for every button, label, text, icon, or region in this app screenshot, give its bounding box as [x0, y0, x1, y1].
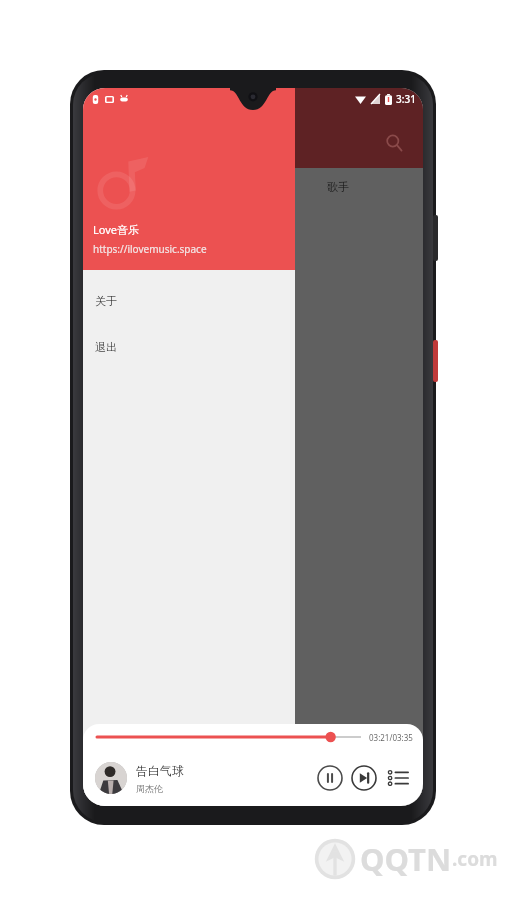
button[interactable]: Next — [349, 763, 379, 793]
staticText: 告白气球 — [136, 763, 184, 778]
staticText: .com — [452, 846, 498, 872]
button[interactable]: 歌手 — [253, 168, 423, 206]
staticText: 歌手 — [327, 180, 349, 194]
button[interactable]: Playlist — [385, 765, 411, 791]
staticText: Love音乐 — [93, 222, 139, 237]
button[interactable] — [95, 762, 127, 794]
staticText: 周杰伦 — [136, 783, 163, 794]
staticText: 03:21/03:35 — [369, 732, 413, 743]
staticText: 3:31 — [396, 92, 416, 106]
button[interactable]: Love音乐 — [83, 88, 295, 270]
staticText: 退出 — [95, 340, 117, 354]
button[interactable] — [97, 729, 361, 745]
button[interactable]: Pause — [315, 763, 345, 793]
button[interactable]: Search — [377, 126, 411, 160]
button[interactable]: 退出 — [83, 324, 295, 370]
button[interactable]: 关于 — [83, 278, 295, 324]
staticText: https://ilovemusic.space — [93, 242, 207, 256]
button[interactable]: 歌单 — [83, 168, 253, 206]
staticText: QQTN — [360, 838, 452, 880]
staticText: 关于 — [95, 294, 117, 308]
